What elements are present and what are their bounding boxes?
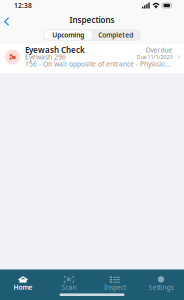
button[interactable]: Eyewash Check <box>0 44 184 73</box>
button[interactable]: Back <box>0 11 15 27</box>
staticText: Home <box>13 283 32 292</box>
button[interactable]: Settings <box>138 275 184 292</box>
button[interactable]: Inspect <box>92 275 138 292</box>
staticText: Eyewash Check <box>25 45 85 55</box>
staticText: Inspections <box>69 15 114 25</box>
staticText: Settings <box>148 283 173 292</box>
button[interactable]: Scan <box>46 275 92 292</box>
staticText: Completed <box>98 31 133 39</box>
staticText: Inspect <box>104 283 126 292</box>
staticText: Overdue <box>145 46 172 54</box>
staticText: Due 11/1/2023 <box>136 53 172 61</box>
staticText: Upcoming <box>52 31 84 39</box>
staticText: Eyewash 296 <box>25 53 66 61</box>
button[interactable]: Completed <box>92 30 139 40</box>
button[interactable]: Upcoming <box>44 30 92 40</box>
staticText: 12:38 <box>14 1 32 10</box>
staticText: 156 - On wall opposite of entrance - Phy… <box>25 60 171 68</box>
staticText: Scan <box>61 283 76 292</box>
button[interactable]: Home <box>0 275 46 292</box>
